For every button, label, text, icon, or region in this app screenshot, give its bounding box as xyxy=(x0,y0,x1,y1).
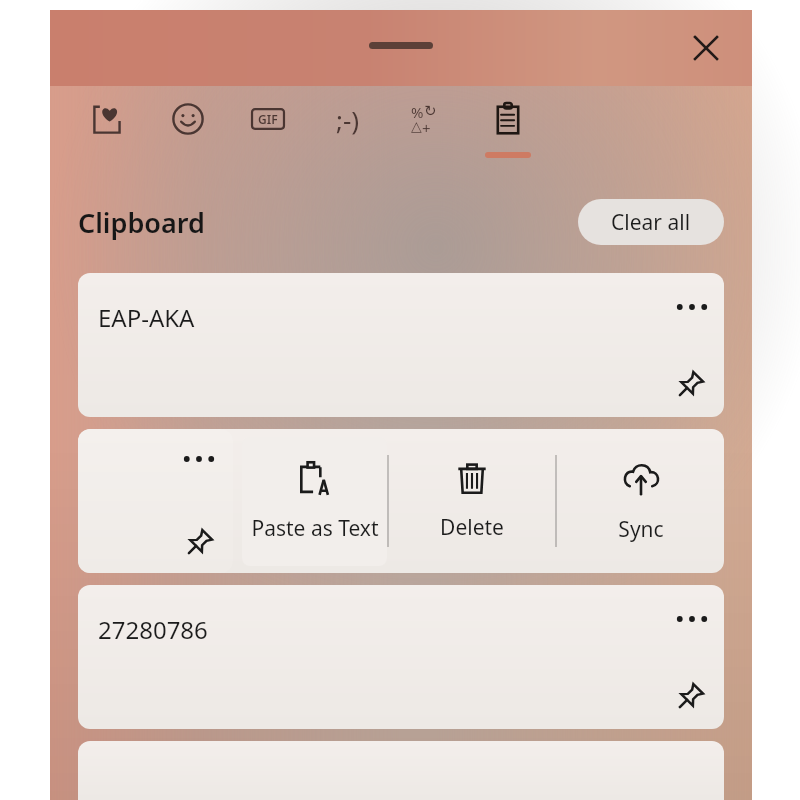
staticText: Clear all xyxy=(611,208,691,237)
staticText: EAP-AKA xyxy=(98,301,195,334)
button[interactable]: Paste as Text xyxy=(242,437,387,566)
button[interactable]: Clipboard xyxy=(468,86,548,175)
staticText: GIF xyxy=(258,111,278,127)
staticText: Delete xyxy=(440,513,504,542)
button[interactable]: Pin item xyxy=(666,361,714,409)
staticText: + xyxy=(422,118,431,136)
button[interactable] xyxy=(78,741,724,800)
button[interactable]: More options xyxy=(668,595,716,643)
button[interactable]: Clear all xyxy=(578,199,724,245)
button[interactable]: Kaomoji xyxy=(308,86,388,175)
button[interactable]: 27280786 xyxy=(78,585,724,729)
staticText: Clipboard xyxy=(78,204,205,241)
staticText: Sync xyxy=(618,515,664,544)
button[interactable]: Recent and favorites xyxy=(68,86,148,175)
button[interactable]: EAP-AKA xyxy=(78,273,724,417)
button[interactable]: Sync xyxy=(557,429,724,573)
staticText: % xyxy=(411,102,424,122)
button[interactable]: More options xyxy=(177,437,221,481)
button[interactable]: Pin item xyxy=(666,673,714,721)
button[interactable]: Pin item xyxy=(177,521,221,565)
button[interactable]: More options xyxy=(78,429,233,573)
staticText: ;-) xyxy=(336,102,360,136)
button[interactable]: Drag handle xyxy=(369,42,433,49)
staticText: ↻ xyxy=(424,102,437,119)
staticText: 27280786 xyxy=(98,613,208,646)
button[interactable]: Symbols xyxy=(388,86,468,175)
button[interactable]: More options xyxy=(668,283,716,331)
button[interactable]: Delete xyxy=(389,429,555,573)
button[interactable]: GIF xyxy=(228,86,308,175)
button[interactable]: Emoji xyxy=(148,86,228,175)
button[interactable]: Close xyxy=(682,24,730,72)
staticText: Paste as Text xyxy=(251,514,379,543)
staticText: △ xyxy=(411,118,422,134)
